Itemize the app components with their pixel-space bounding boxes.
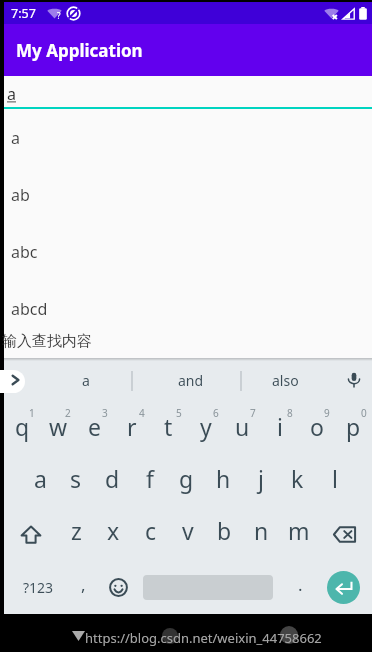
button[interactable]: and: [171, 362, 211, 398]
staticText: r: [127, 411, 137, 442]
button[interactable]: k: [279, 456, 316, 508]
button[interactable]: e: [76, 403, 113, 456]
staticText: e: [88, 411, 101, 442]
button[interactable]: x: [95, 508, 132, 560]
button[interactable]: Voice input: [338, 364, 370, 396]
staticText: g: [179, 463, 194, 494]
staticText: j: [258, 463, 264, 494]
staticText: ,: [81, 573, 86, 596]
staticText: c: [145, 515, 157, 546]
button[interactable]: n: [243, 508, 280, 560]
button[interactable]: c: [132, 508, 169, 560]
staticText: and: [178, 371, 204, 390]
button[interactable]: b: [206, 508, 243, 560]
button[interactable]: j: [242, 456, 279, 508]
staticText: 3: [102, 406, 108, 420]
staticText: My Application: [16, 39, 143, 62]
button[interactable]: t: [150, 403, 187, 456]
button[interactable]: ?123: [8, 560, 68, 614]
staticText: d: [105, 463, 120, 494]
staticText: k: [291, 463, 304, 494]
staticText: ab: [11, 184, 30, 206]
staticText: 7:57: [11, 5, 36, 22]
staticText: v: [182, 515, 194, 546]
staticText: b: [217, 515, 232, 546]
staticText: p: [346, 411, 361, 442]
staticText: a: [82, 371, 90, 390]
staticText: m: [288, 515, 310, 546]
staticText: .: [298, 573, 303, 596]
staticText: w: [49, 411, 68, 442]
staticText: 5: [176, 406, 182, 420]
staticText: z: [71, 515, 82, 546]
button[interactable]: More suggestions: [0, 370, 25, 393]
button[interactable]: Shift: [4, 508, 58, 560]
staticText: s: [70, 463, 82, 494]
button[interactable]: q: [4, 403, 40, 456]
button[interactable]: d: [94, 456, 131, 508]
staticText: l: [332, 463, 338, 494]
button[interactable]: o: [298, 403, 335, 456]
button[interactable]: ab: [4, 173, 372, 230]
staticText: also: [272, 371, 299, 390]
button[interactable]: f: [131, 456, 168, 508]
button[interactable]: a: [4, 116, 372, 173]
staticText: 4: [139, 406, 145, 420]
button[interactable]: s: [58, 456, 94, 508]
staticText: 输入查找内容: [2, 332, 92, 351]
staticText: h: [216, 463, 231, 494]
button[interactable]: w: [40, 403, 76, 456]
button[interactable]: abcd: [4, 287, 372, 344]
staticText: ?: [57, 10, 61, 21]
staticText: y: [200, 411, 212, 442]
button[interactable]: y: [187, 403, 224, 456]
staticText: 1: [29, 406, 35, 420]
staticText: https://blog.csdn.net/weixin_44758662: [85, 629, 322, 647]
staticText: 0: [361, 406, 367, 420]
staticText: abcd: [11, 298, 48, 320]
staticText: abc: [11, 241, 38, 263]
button[interactable]: i: [261, 403, 298, 456]
staticText: i: [277, 411, 283, 442]
staticText: 7: [250, 406, 256, 420]
button[interactable]: abc: [4, 230, 372, 287]
staticText: 6: [213, 406, 219, 420]
button[interactable]: p: [335, 403, 372, 456]
staticText: q: [15, 411, 30, 442]
button[interactable]: z: [58, 508, 95, 560]
button[interactable]: a: [66, 362, 106, 398]
button[interactable]: ,: [66, 560, 100, 614]
staticText: 2: [65, 406, 71, 420]
staticText: a: [7, 83, 16, 105]
button[interactable]: .: [284, 560, 316, 614]
button[interactable]: g: [168, 456, 205, 508]
staticText: o: [310, 411, 324, 442]
staticText: a: [34, 463, 47, 494]
staticText: a: [11, 127, 20, 149]
button[interactable]: v: [169, 508, 206, 560]
button[interactable]: also: [265, 362, 305, 398]
staticText: f: [146, 463, 154, 494]
staticText: 9: [324, 406, 330, 420]
staticText: t: [164, 411, 173, 442]
button[interactable]: m: [280, 508, 317, 560]
staticText: x: [107, 515, 120, 546]
button[interactable]: Enter: [327, 571, 360, 604]
button[interactable]: l: [316, 456, 353, 508]
staticText: ?123: [23, 578, 54, 597]
button[interactable]: r: [113, 403, 150, 456]
button[interactable]: a: [22, 456, 58, 508]
button[interactable]: h: [205, 456, 242, 508]
button[interactable]: Emoji: [100, 560, 136, 614]
staticText: 8: [287, 406, 293, 420]
button[interactable]: u: [224, 403, 261, 456]
staticText: u: [235, 411, 250, 442]
staticText: n: [254, 515, 269, 546]
button[interactable]: Backspace: [317, 508, 372, 560]
